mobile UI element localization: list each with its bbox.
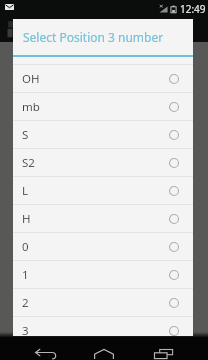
- staticText: Select Position 3 number: [23, 29, 164, 45]
- staticText: mb: [22, 99, 169, 115]
- button[interactable]: Home: [91, 338, 117, 360]
- staticText: 3: [22, 323, 169, 336]
- button[interactable]: S: [13, 121, 193, 148]
- staticText: 12:49: [180, 2, 206, 16]
- button[interactable]: 3: [13, 317, 193, 336]
- button[interactable]: Back: [33, 338, 59, 360]
- staticText: 1: [22, 267, 169, 283]
- staticText: 0: [22, 239, 169, 255]
- button[interactable]: mb: [13, 93, 193, 120]
- staticText: L: [22, 183, 169, 199]
- staticText: OH: [22, 71, 169, 87]
- button[interactable]: 0: [13, 233, 193, 260]
- button[interactable]: OH: [13, 65, 193, 92]
- staticText: H: [22, 211, 169, 227]
- staticText: S: [22, 127, 169, 143]
- button[interactable]: 2: [13, 289, 193, 316]
- button[interactable]: Recents: [150, 338, 176, 360]
- button[interactable]: L: [13, 177, 193, 204]
- button[interactable]: 1: [13, 261, 193, 288]
- staticText: 2: [22, 295, 169, 311]
- button[interactable]: H: [13, 205, 193, 232]
- button[interactable]: S2: [13, 149, 193, 176]
- staticText: S2: [22, 155, 169, 171]
